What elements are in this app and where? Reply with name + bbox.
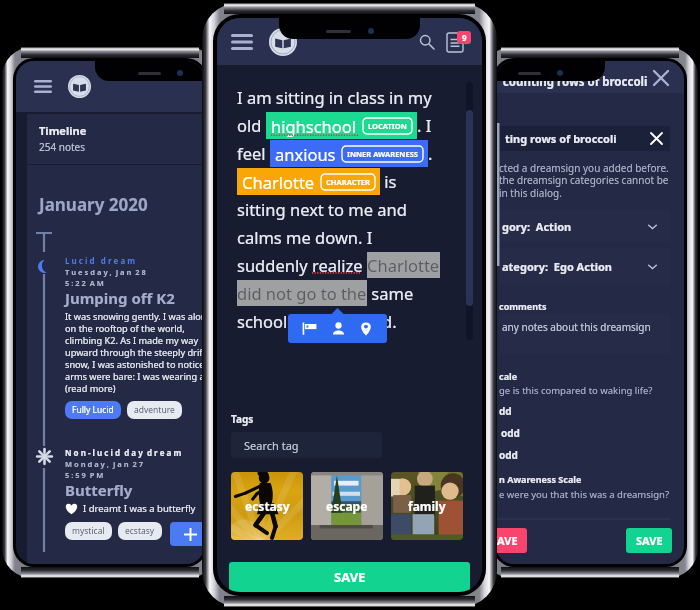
staticText: feel xyxy=(237,142,270,164)
button[interactable]: ecstasy xyxy=(118,522,162,540)
button[interactable]: Notes xyxy=(447,31,471,52)
staticText: any notes about this dreamsign xyxy=(502,320,651,334)
staticText: I dreamt I was a butterfly xyxy=(83,502,196,515)
staticText: January 2020 xyxy=(39,193,148,216)
button[interactable]: Timeline xyxy=(27,114,204,164)
staticText: anxious xyxy=(275,143,336,165)
staticText: calms me down. I xyxy=(237,226,373,248)
button[interactable]: SAVE xyxy=(229,562,470,592)
button[interactable]: escape xyxy=(311,472,383,540)
staticText: ting rows of broccoli xyxy=(505,131,617,146)
button[interactable] xyxy=(496,528,527,553)
staticText: suddenly xyxy=(237,254,312,276)
staticText: cted a dreamsign you added before. the d… xyxy=(499,161,669,200)
button[interactable]: adventure xyxy=(127,401,182,419)
button[interactable]: Close xyxy=(654,71,668,85)
staticText: family xyxy=(408,498,446,514)
staticText: sitting next to me and xyxy=(237,198,407,220)
staticText: cale xyxy=(499,370,518,382)
staticText: odd xyxy=(501,426,520,440)
staticText: I am sitting in class in my xyxy=(237,86,432,108)
staticText: T u e s d a y , J a n 2 8 xyxy=(65,267,146,277)
staticText: Fully Lucid xyxy=(72,404,114,416)
staticText: LOCATION xyxy=(368,121,407,131)
staticText: N o n - l u c i d d a y d r e a m xyxy=(65,447,182,458)
staticText: It was snowing gently. I was alone on th… xyxy=(65,310,204,394)
staticText: adventure xyxy=(134,404,175,416)
staticText: 5 : 2 2 A M xyxy=(65,278,104,288)
staticText: odd xyxy=(499,448,518,462)
staticText: SAVE xyxy=(334,568,366,586)
staticText: dd xyxy=(499,404,512,418)
staticText: Butterfly xyxy=(65,480,133,500)
staticText: SAVE xyxy=(496,533,518,548)
staticText: highschool xyxy=(271,115,357,137)
button[interactable]: Character tag xyxy=(331,321,346,336)
staticText: comments xyxy=(499,300,547,312)
staticText: ategory: Ego Action xyxy=(502,259,612,274)
button[interactable]: any notes about this dreamsign xyxy=(499,314,670,354)
button[interactable]: highschool xyxy=(266,112,417,139)
button[interactable]: Charlotte xyxy=(237,168,380,195)
staticText: INNER AWARENESS xyxy=(347,149,418,159)
staticText: Timeline xyxy=(39,123,87,138)
button[interactable]: anxious xyxy=(270,140,428,167)
button[interactable]: family xyxy=(391,472,463,540)
button[interactable]: gory: Action xyxy=(499,210,670,242)
staticText: 9 xyxy=(462,32,467,43)
staticText: gory: Action xyxy=(502,219,572,234)
button[interactable]: Setting tag xyxy=(302,321,317,336)
button[interactable]: Search tag xyxy=(231,432,382,458)
button[interactable]: Menu xyxy=(34,80,52,93)
staticText: CHARACTER xyxy=(326,177,370,187)
staticText: . xyxy=(428,142,433,164)
staticText: d. xyxy=(382,310,397,332)
staticText: 5 : 5 9 P M xyxy=(65,470,104,480)
staticText: ecstasy xyxy=(245,498,290,514)
staticText: Jumping off K2 xyxy=(65,288,175,308)
button[interactable]: Menu xyxy=(231,34,253,50)
staticText: did not go to the xyxy=(237,282,367,304)
staticText: mystical xyxy=(72,525,105,537)
button[interactable]: SAVE xyxy=(626,528,672,553)
staticText: Charlotte xyxy=(242,171,315,193)
staticText: "counting rows of broccoli xyxy=(498,74,648,90)
button[interactable]: Fully Lucid xyxy=(65,401,121,419)
staticText: . I xyxy=(417,114,432,136)
staticText: SAVE xyxy=(636,533,663,548)
staticText: M o n d a y , J a n 2 7 xyxy=(65,459,144,469)
button[interactable]: ategory: Ego Action xyxy=(499,248,670,285)
staticText: ge is this compared to waking life? xyxy=(499,384,653,397)
staticText: same xyxy=(367,282,414,304)
staticText: n Awareness Scale xyxy=(499,473,582,485)
button[interactable]: Search xyxy=(420,35,434,49)
staticText: realize xyxy=(312,254,367,276)
button[interactable]: Location tag xyxy=(359,322,373,336)
staticText: escape xyxy=(326,498,368,514)
staticText: L u c i d d r e a m xyxy=(65,255,136,266)
button[interactable]: mystical xyxy=(65,522,112,540)
button[interactable]: ecstasy xyxy=(231,472,303,540)
button[interactable]: Add entry xyxy=(170,522,204,546)
button[interactable]: Close dialog xyxy=(651,133,662,144)
staticText: is xyxy=(380,170,397,192)
staticText: Tags xyxy=(231,412,254,426)
staticText: old xyxy=(237,114,266,136)
staticText: ecstasy xyxy=(125,525,155,537)
staticText: 254 notes xyxy=(39,140,86,154)
staticText: e were you that this was a dreamsign? xyxy=(499,488,670,501)
staticText: school xyxy=(237,310,292,332)
staticText: Charlotte xyxy=(367,254,440,276)
staticText: Search tag xyxy=(244,438,299,453)
